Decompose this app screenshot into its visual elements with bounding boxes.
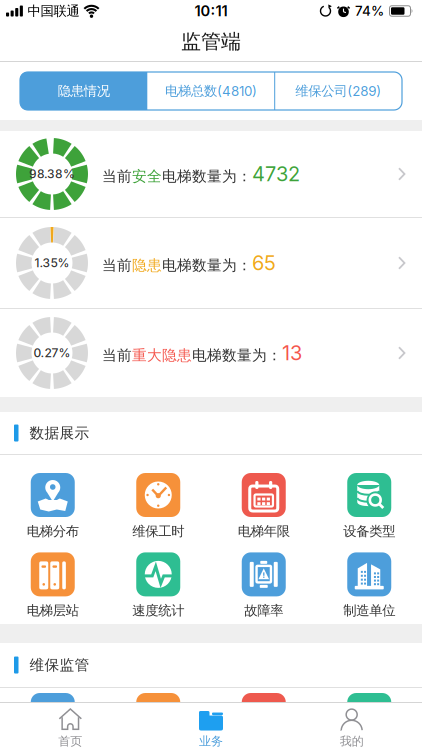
staticText: 13 [282,341,302,365]
staticText: 1.35% [34,256,69,270]
staticText: 故障率 [244,602,283,619]
staticText: 隐患情况 [58,83,110,99]
staticText: 监管端 [181,29,241,54]
staticText: 65 [252,251,276,275]
staticText: 速度统计 [132,602,184,619]
staticText: 10:11 [194,2,227,20]
staticText: 4732 [252,162,300,186]
staticText: 业务 [199,734,223,749]
staticText: 维保工时 [132,523,184,539]
staticText: 数据展示 [29,424,89,442]
staticText: 电梯数量为： [162,167,252,185]
staticText: 维保监管 [29,656,89,674]
staticText: 首页 [58,734,82,749]
staticText: 电梯数量为： [162,256,252,274]
staticText: 隐患 [132,256,162,274]
staticText: 当前 [102,167,132,185]
staticText: 设备类型 [343,523,395,539]
staticText: 重大隐患 [132,346,192,364]
staticText: 电梯数量为： [192,346,282,364]
staticText: 我的 [340,734,364,749]
staticText: 电梯层站 [27,602,79,619]
staticText: 中国联通 [27,3,79,19]
staticText: 当前 [102,256,132,274]
staticText: 0.27% [33,346,70,360]
staticText: 电梯分布 [27,523,79,539]
staticText: 电梯总数(4810) [165,83,257,99]
staticText: 制造单位 [343,602,395,619]
staticText: 维保公司(289) [295,83,381,99]
staticText: 电梯年限 [238,523,290,539]
staticText: 当前 [102,346,132,364]
staticText: 98.38% [29,167,75,181]
staticText: 74% [355,3,384,19]
staticText: 安全 [132,167,162,185]
